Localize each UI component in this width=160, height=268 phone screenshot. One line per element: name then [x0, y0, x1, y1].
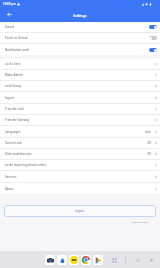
button[interactable]: Export: [0, 92, 160, 103]
staticText: Settings: [73, 13, 87, 18]
button[interactable]: On: [149, 25, 157, 29]
button[interactable]: Notes: [69, 255, 79, 265]
staticText: 10:58 pm: [3, 2, 16, 6]
button[interactable]: Camera: [45, 255, 55, 265]
staticText: Off: [147, 141, 152, 145]
staticText: Services: [5, 175, 17, 179]
button[interactable]: Make Admin: [0, 70, 160, 80]
button[interactable]: Off: [149, 36, 157, 40]
button[interactable]: Languages: [0, 126, 160, 137]
staticText: Off: [147, 152, 152, 156]
staticText: Delete Account: [132, 221, 149, 224]
staticText: Languages: [5, 130, 21, 134]
staticText: Hide invalid access: [5, 152, 32, 156]
button[interactable]: Delete Account: [126, 220, 160, 225]
staticText: Make Admin: [5, 73, 23, 77]
staticText: Export: [5, 96, 15, 100]
button[interactable]: Chrome: [81, 255, 91, 265]
button[interactable]: Notification push: [0, 44, 160, 55]
button[interactable]: Transfer Lock: [0, 104, 160, 114]
button[interactable]: Lock Group: [0, 81, 160, 91]
button[interactable]: About: [0, 183, 160, 194]
button[interactable]: Sound: [0, 22, 160, 32]
button[interactable]: Locks requiring phone online: [0, 160, 160, 170]
button[interactable]: Back: [133, 256, 141, 264]
staticText: Notification push: [5, 48, 30, 52]
button[interactable]: Files: [57, 255, 67, 265]
staticText: Lock Users: [5, 62, 21, 66]
button[interactable]: Screen Lock: [0, 138, 160, 148]
staticText: Transfer Gateway: [5, 118, 30, 122]
button[interactable]: Play Store: [93, 255, 103, 265]
staticText: Touch to Unlock: [5, 36, 28, 40]
button[interactable]: Back: [4, 9, 15, 20]
staticText: Logout: [75, 209, 85, 213]
staticText: Lock Group: [5, 84, 22, 88]
staticText: Transfer Lock: [5, 107, 24, 111]
staticText: About: [5, 187, 14, 191]
staticText: Auto: [145, 130, 152, 134]
button[interactable]: On: [149, 48, 157, 52]
staticText: Screen Lock: [5, 141, 22, 145]
staticText: Sound: [5, 25, 15, 29]
button[interactable]: Hide invalid access: [0, 149, 160, 159]
button[interactable]: All apps: [109, 255, 119, 265]
button[interactable]: Lock Users: [0, 59, 160, 69]
button[interactable]: Logout: [4, 205, 156, 217]
button[interactable]: Transfer Gateway: [0, 115, 160, 125]
staticText: Locks requiring phone online: [5, 163, 47, 167]
button[interactable]: Home: [147, 256, 155, 264]
button[interactable]: Services: [0, 171, 160, 182]
button[interactable]: Touch to Unlock: [0, 33, 160, 43]
